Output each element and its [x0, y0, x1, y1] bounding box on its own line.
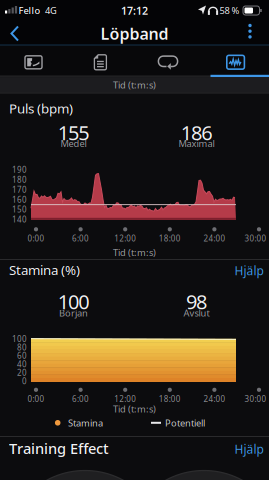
staticText: 100 [58, 288, 89, 315]
staticText: Puls (bpm) [9, 99, 73, 117]
button[interactable]: Statistik [67, 47, 133, 78]
button[interactable]: Hjälp [203, 262, 263, 278]
staticText: 0:00 [27, 233, 44, 244]
staticText: Löpband [100, 23, 168, 44]
staticText: 18:00 [159, 233, 181, 244]
staticText: Fello [18, 4, 40, 17]
staticText: 30:00 [244, 233, 266, 244]
staticText: 170 [12, 184, 27, 195]
staticText: 80 [17, 342, 27, 353]
button[interactable]: More [237, 22, 263, 41]
staticText: Training Effect [9, 438, 109, 458]
staticText: Stamina (%) [9, 261, 80, 279]
staticText: 60 [17, 350, 27, 361]
staticText: Hjälp [234, 262, 263, 278]
staticText: Tid (t:m:s) [113, 403, 156, 415]
staticText: 0 [22, 376, 27, 386]
staticText: 6:00 [72, 394, 89, 404]
staticText: 12:00 [114, 233, 136, 244]
button[interactable]: Översikt [0, 47, 66, 78]
staticText: 140 [12, 214, 27, 225]
staticText: 20 [17, 367, 27, 378]
staticText: 190 [12, 164, 27, 175]
button[interactable]: Diagram [202, 47, 268, 78]
staticText: Tid (t:m:s) [113, 246, 156, 259]
staticText: 150 [12, 204, 27, 215]
button[interactable]: Back [0, 22, 30, 44]
staticText: 24:00 [203, 394, 225, 404]
staticText: Hjälp [234, 441, 263, 457]
staticText: 100 [12, 333, 27, 344]
staticText: Stamina [68, 417, 103, 429]
staticText: 18:00 [159, 394, 181, 404]
staticText: 17:12 [121, 3, 148, 18]
staticText: 4G [45, 4, 57, 17]
button[interactable]: Varv [135, 47, 201, 78]
staticText: Medel [60, 137, 86, 150]
button[interactable]: Hjälp [203, 441, 263, 457]
staticText: 58 % [219, 4, 239, 17]
staticText: 186 [181, 119, 212, 146]
staticText: 6:00 [72, 233, 89, 244]
staticText: 160 [12, 194, 27, 205]
staticText: 0:00 [27, 394, 44, 404]
staticText: Tid (t:m:s) [113, 79, 156, 91]
staticText: 24:00 [203, 233, 225, 244]
staticText: 12:00 [114, 394, 136, 404]
staticText: Maximal [178, 137, 214, 150]
staticText: 155 [58, 119, 89, 146]
staticText: Början [59, 307, 88, 319]
staticText: 98 [186, 288, 207, 315]
staticText: 40 [17, 359, 27, 369]
staticText: 180 [12, 174, 27, 185]
staticText: Avslut [183, 307, 209, 319]
staticText: Potentiell [165, 417, 205, 429]
staticText: 30:00 [244, 394, 266, 404]
